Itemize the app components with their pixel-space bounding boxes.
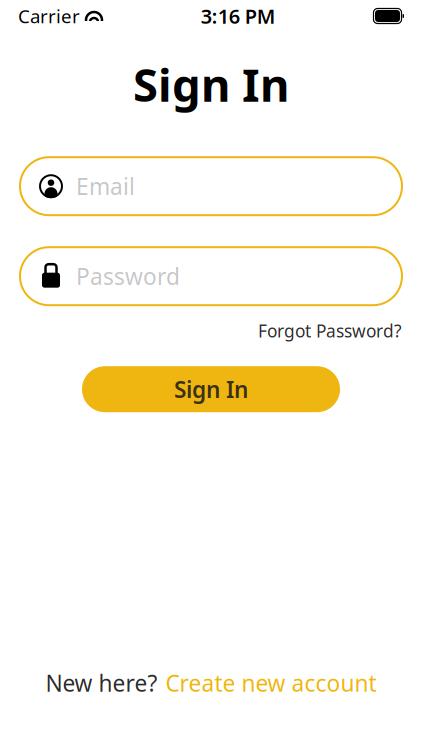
staticText: Sign In: [133, 54, 289, 114]
staticText: Sign In: [174, 374, 248, 404]
button[interactable]: Create new account: [165, 668, 376, 698]
staticText: Password: [76, 261, 180, 291]
staticText: Carrier: [18, 4, 80, 28]
button[interactable]: Forgot Password?: [258, 319, 402, 342]
staticText: New here?: [45, 668, 157, 698]
staticText: Email: [76, 171, 135, 201]
staticText: Create new account: [165, 668, 376, 698]
button[interactable]: Sign In: [82, 366, 340, 412]
staticText: 3:16 PM: [201, 3, 276, 29]
button[interactable]: Email: [20, 157, 402, 215]
button[interactable]: Password: [20, 247, 402, 305]
staticText: Forgot Password?: [258, 319, 402, 342]
